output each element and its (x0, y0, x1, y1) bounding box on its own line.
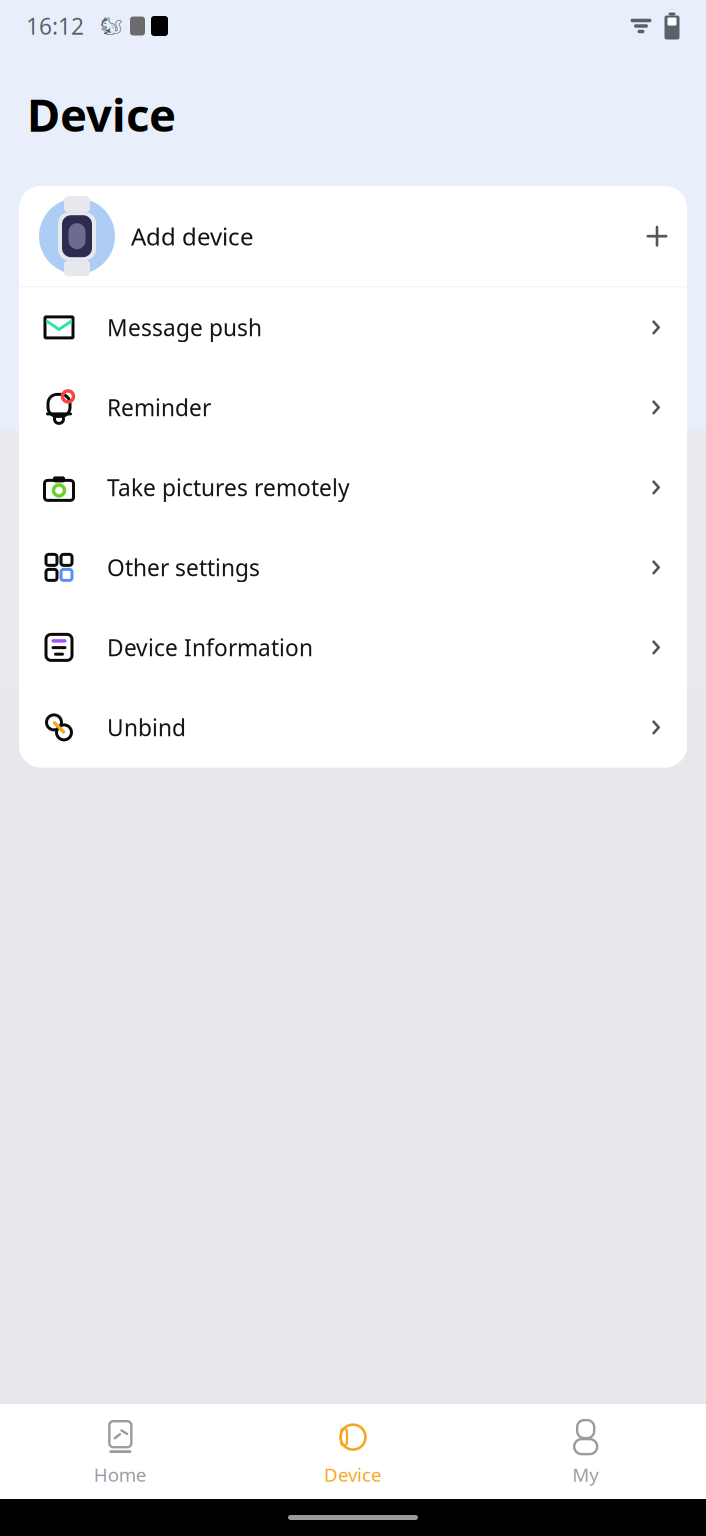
staticText: Device (324, 1462, 382, 1487)
button[interactable]: Device (237, 1410, 469, 1493)
button[interactable]: Add device (19, 186, 687, 286)
button[interactable]: Other settings (19, 527, 687, 607)
staticText: Unbind (107, 712, 186, 742)
staticText: 16:12 (26, 11, 84, 41)
staticText: Home (94, 1462, 147, 1487)
staticText: Take pictures remotely (107, 472, 350, 502)
staticText: Reminder (107, 392, 211, 422)
staticText: Device (27, 84, 176, 144)
button[interactable]: Take pictures remotely (19, 447, 687, 527)
staticText: Device Information (107, 632, 313, 662)
staticText: Message push (107, 312, 262, 342)
button[interactable]: Message push (19, 287, 687, 367)
staticText: My (572, 1462, 599, 1487)
button[interactable]: Reminder (19, 367, 687, 447)
button[interactable]: Home (4, 1410, 237, 1493)
staticText: 🐿 (100, 16, 122, 36)
button[interactable]: Unbind (19, 687, 687, 767)
staticText: Other settings (107, 552, 260, 582)
staticText: Add device (131, 220, 254, 252)
button[interactable]: My (469, 1410, 702, 1493)
button[interactable]: Device Information (19, 607, 687, 687)
